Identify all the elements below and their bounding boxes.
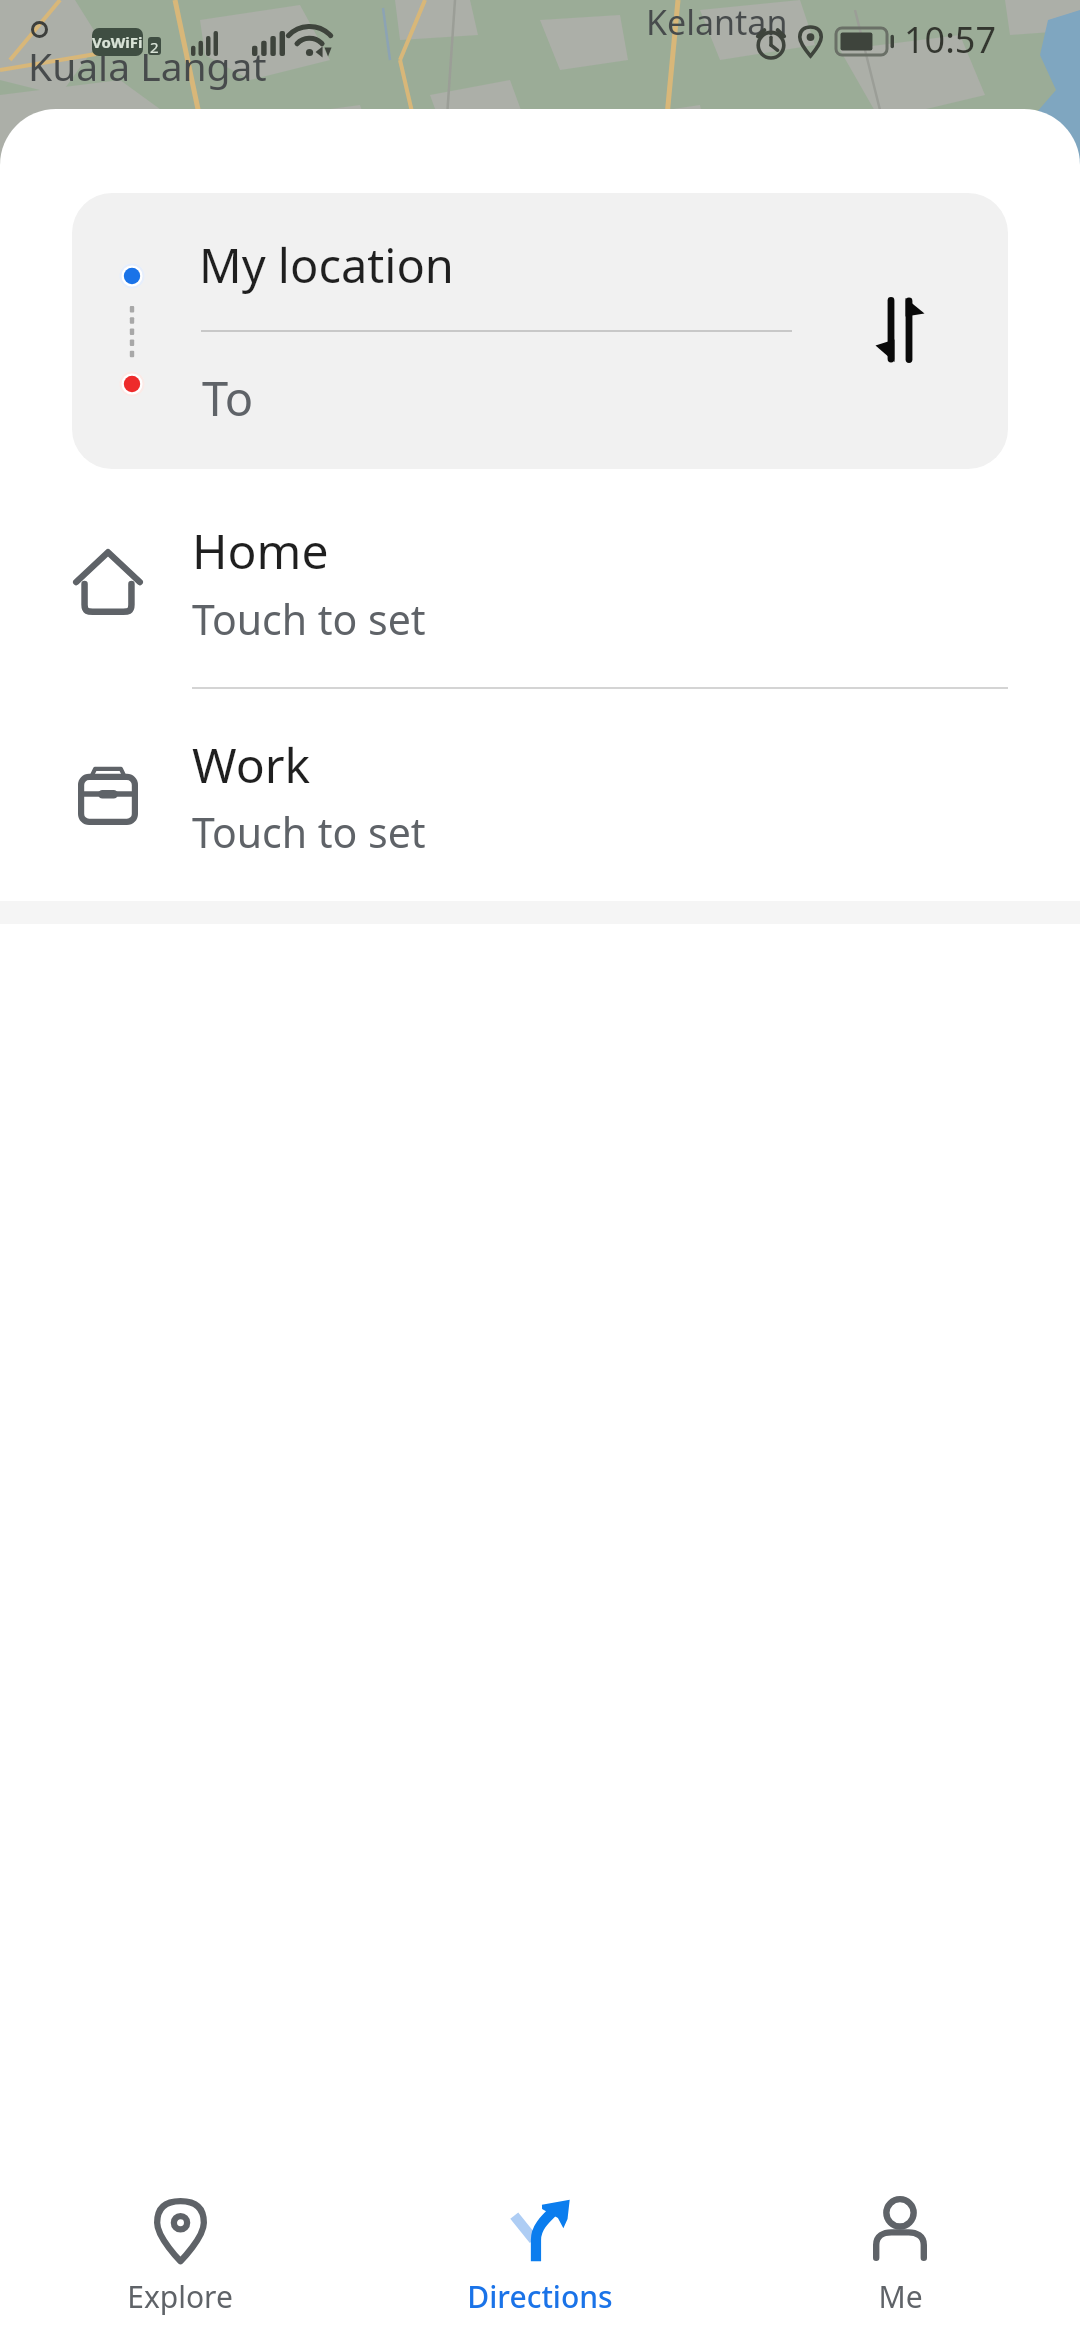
button[interactable]: Directions — [360, 2140, 720, 2340]
staticText: 10:57 — [904, 15, 997, 64]
staticText: Me — [878, 2276, 923, 2317]
button[interactable]: Me — [720, 2140, 1080, 2340]
button[interactable]: My location — [182, 211, 842, 329]
staticText: Kuala Langat — [28, 39, 267, 92]
staticText: My location — [199, 233, 454, 297]
staticText: 2 — [150, 37, 159, 55]
button[interactable]: Swap start and destination — [845, 275, 955, 385]
button[interactable]: Work — [0, 689, 1080, 901]
button[interactable]: To — [182, 335, 842, 451]
button[interactable]: Explore — [0, 2140, 360, 2340]
button[interactable]: Home — [0, 470, 1080, 688]
staticText: Work — [192, 732, 311, 797]
staticText: Kelantan — [646, 0, 788, 45]
staticText: Explore — [127, 2276, 233, 2317]
staticText: Home — [192, 518, 329, 583]
staticText: Touch to set — [192, 804, 426, 860]
staticText: VoWiFi — [92, 32, 143, 52]
staticText: Directions — [467, 2276, 613, 2317]
staticText: Touch to set — [192, 591, 426, 647]
staticText: To — [202, 366, 254, 430]
